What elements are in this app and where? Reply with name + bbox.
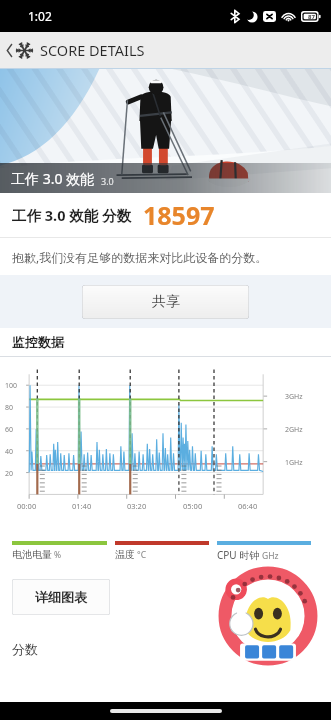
staticText: 40 bbox=[5, 447, 14, 457]
staticText: 抱歉,我们没有足够的数据来对比此设备的分数。 bbox=[12, 249, 268, 265]
staticText: 温度 bbox=[115, 548, 135, 561]
staticText: 2GHz bbox=[285, 425, 303, 435]
staticText: SCORE DETAILS bbox=[40, 40, 145, 60]
staticText: °C bbox=[137, 549, 147, 561]
staticText: % bbox=[54, 549, 62, 561]
button[interactable]: Back bbox=[2, 37, 16, 63]
staticText: 3GHz bbox=[285, 392, 303, 402]
staticText: 工作 3.0 效能 bbox=[11, 169, 95, 188]
staticText: 05:00 bbox=[183, 501, 203, 511]
staticText: 00:00 bbox=[17, 501, 37, 511]
staticText: 分数 bbox=[12, 641, 38, 657]
staticText: 100 bbox=[5, 381, 18, 391]
staticText: 01:40 bbox=[72, 501, 92, 511]
button[interactable]: 共享 bbox=[82, 285, 249, 319]
staticText: 18597 bbox=[143, 198, 215, 232]
staticText: 共享 bbox=[152, 293, 180, 311]
staticText: 20 bbox=[5, 469, 14, 479]
staticText: 87 bbox=[308, 13, 315, 21]
staticText: GHz bbox=[262, 550, 279, 562]
staticText: 3.0 bbox=[101, 175, 114, 187]
staticText: 60 bbox=[5, 425, 14, 435]
staticText: 详细图表 bbox=[35, 589, 87, 605]
staticText: 1:02 bbox=[28, 8, 52, 24]
staticText: 电池电量 bbox=[12, 548, 52, 561]
staticText: 工作 3.0 效能 分数 bbox=[12, 205, 131, 225]
button[interactable]: 详细图表 bbox=[12, 579, 110, 615]
staticText: CPU 时钟 bbox=[217, 548, 260, 562]
staticText: 06:40 bbox=[238, 501, 258, 511]
staticText: 1GHz bbox=[285, 458, 303, 468]
staticText: 监控数据 bbox=[12, 334, 64, 350]
staticText: 03:20 bbox=[127, 501, 147, 511]
staticText: 80 bbox=[5, 403, 14, 413]
